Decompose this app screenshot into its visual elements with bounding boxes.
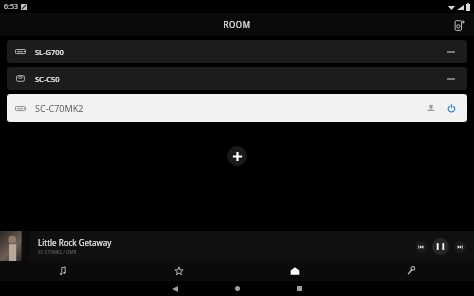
button[interactable]: SL-G700 [7,40,467,63]
staticText: SL-G700 [35,47,64,57]
button[interactable]: Pause [432,238,449,255]
button[interactable]: Music [53,261,73,281]
button[interactable]: Previous [415,241,427,253]
staticText: SC-C70MK2 / DMR [38,249,77,255]
button[interactable]: Rooms [285,261,305,281]
staticText: SC-C50 [35,74,60,84]
button[interactable]: Back [164,281,186,296]
button[interactable]: Power [443,100,459,116]
staticText: SC-C70MK2 [35,102,84,114]
button[interactable]: Mute [443,44,459,60]
button[interactable]: SC-C70MK2 [7,94,467,122]
button[interactable]: Little Rock Getaway [0,231,474,261]
staticText: ROOM [223,19,251,30]
button[interactable]: Add speaker [450,16,468,34]
button[interactable]: Home [226,281,248,296]
button[interactable]: Favorites [169,261,189,281]
button[interactable]: Mute [443,71,459,87]
button[interactable]: Next [454,241,466,253]
button[interactable]: Recents [288,281,310,296]
staticText: 6:53 [4,2,18,12]
button[interactable]: Add device [227,146,247,166]
button[interactable]: Output [423,100,439,116]
staticText: Little Rock Getaway [38,237,112,248]
button[interactable]: SC-C50 [7,67,467,90]
button[interactable]: Settings [401,261,421,281]
